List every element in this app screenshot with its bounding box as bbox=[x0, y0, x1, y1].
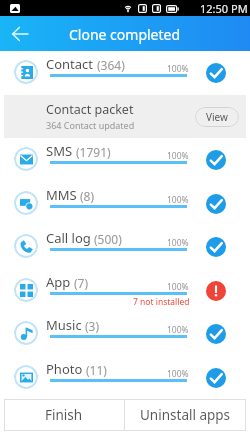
button[interactable]: MMS bbox=[0, 181, 250, 224]
staticText: Call log bbox=[46, 229, 91, 247]
button[interactable]: Contact bbox=[0, 50, 250, 93]
staticText: Contact packet bbox=[46, 101, 134, 118]
staticText: View bbox=[206, 110, 228, 124]
staticText: 364 Contact updated bbox=[46, 119, 135, 131]
staticText: 12:50 PM bbox=[200, 1, 248, 16]
button[interactable]: Photo bbox=[0, 355, 250, 398]
button[interactable]: Uninstall apps bbox=[125, 399, 246, 431]
staticText: (364) bbox=[97, 57, 125, 73]
staticText: Contact bbox=[46, 55, 94, 73]
staticText: (7) bbox=[74, 275, 89, 291]
staticText: 100% bbox=[167, 237, 189, 249]
staticText: 100% bbox=[167, 281, 189, 293]
button[interactable]: Call log bbox=[0, 224, 250, 267]
staticText: 100% bbox=[167, 324, 189, 336]
staticText: SMS bbox=[46, 142, 73, 160]
staticText: 7 not installed bbox=[133, 296, 190, 308]
staticText: 100% bbox=[167, 368, 189, 380]
staticText: (500) bbox=[94, 231, 122, 247]
staticText: App bbox=[46, 273, 71, 291]
staticText: Finish bbox=[45, 406, 83, 424]
button[interactable]: Finish bbox=[4, 399, 124, 431]
staticText: 100% bbox=[167, 194, 189, 206]
staticText: Uninstall apps bbox=[140, 406, 231, 424]
staticText: (3) bbox=[85, 318, 100, 334]
staticText: MMS bbox=[46, 186, 77, 204]
staticText: 100% bbox=[167, 63, 189, 75]
button[interactable]: Back bbox=[2, 16, 37, 51]
staticText: (11) bbox=[86, 362, 107, 378]
button[interactable]: Music bbox=[0, 311, 250, 354]
staticText: Clone completed bbox=[69, 25, 181, 44]
staticText: Photo bbox=[46, 360, 83, 378]
button[interactable]: App bbox=[0, 268, 250, 311]
staticText: 100% bbox=[167, 150, 189, 162]
staticText: (8) bbox=[80, 188, 95, 204]
button[interactable]: View bbox=[195, 107, 239, 127]
button[interactable]: SMS bbox=[0, 137, 250, 180]
staticText: (1791) bbox=[76, 144, 111, 160]
staticText: Music bbox=[46, 316, 82, 334]
